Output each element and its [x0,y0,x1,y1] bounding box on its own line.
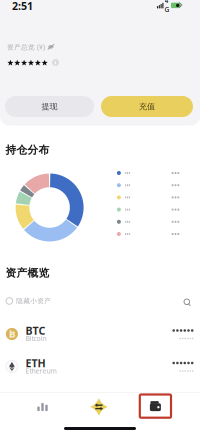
staticText: 4G [164,0,169,14]
staticText: ETH [26,356,46,370]
staticText: B [9,328,15,340]
staticText: Bitcoin [26,334,47,343]
button[interactable]: ETH [0,350,200,382]
button[interactable]: 提现 [5,96,94,117]
button[interactable]: Wallet [140,394,171,418]
button[interactable]: Trade [90,398,108,416]
staticText: 资产总览 (¥) [7,43,45,51]
button[interactable]: Search [184,299,191,306]
staticText: Ethereum [26,367,57,375]
staticText: BTC [26,323,46,338]
staticText: 提现 [41,102,57,111]
staticText: 2:51 [12,0,33,13]
button[interactable]: B [0,318,200,350]
staticText: 资产概览 [5,266,49,279]
button[interactable]: 充值 [101,96,193,117]
button[interactable]: 隐藏小资产 [3,294,83,308]
button[interactable]: Markets [31,396,54,418]
staticText: 持仓分布 [5,143,49,156]
staticText: 隐藏小资产 [16,297,51,305]
staticText: 充值 [139,102,155,111]
